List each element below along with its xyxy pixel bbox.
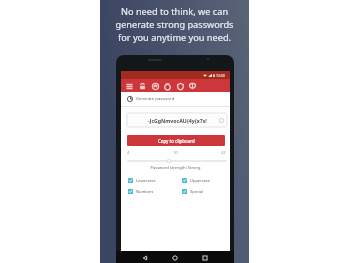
button[interactable]: Numbers xyxy=(128,189,154,194)
button[interactable]: History xyxy=(163,82,172,91)
staticText: Special xyxy=(190,189,204,194)
staticText: -JcGgNmvocAU{4y{x7s! xyxy=(148,117,207,124)
button[interactable]: Special xyxy=(182,189,204,194)
button[interactable]: Menu xyxy=(125,82,134,91)
button[interactable]: Security check xyxy=(176,82,185,91)
staticText: 10 xyxy=(173,150,178,155)
button[interactable]: Lowercase xyxy=(128,178,156,183)
staticText: Password strength: Strong xyxy=(121,165,230,170)
staticText: 32 xyxy=(221,150,226,155)
staticText: Uppercase xyxy=(190,178,211,183)
button[interactable]: Copy to clipboard xyxy=(127,135,225,146)
button[interactable]: Uppercase xyxy=(182,178,211,183)
staticText: No need to think, we can generate strong… xyxy=(100,5,249,44)
button[interactable] xyxy=(127,157,227,165)
button[interactable]: -JcGgNmvocAU{4y{x7s! xyxy=(127,113,227,127)
button[interactable]: Password vault xyxy=(138,82,147,91)
button[interactable]: Home xyxy=(171,254,179,262)
staticText: Generate password xyxy=(136,96,175,102)
staticText: 4 xyxy=(127,150,130,155)
button[interactable]: Recents xyxy=(201,254,209,262)
staticText: 12:30 xyxy=(216,73,225,78)
button[interactable]: Generate xyxy=(151,82,160,91)
staticText: Lowercase xyxy=(136,178,156,183)
staticText: Numbers xyxy=(136,189,154,194)
button[interactable]: Notes xyxy=(188,82,197,91)
staticText: Copy to clipboard xyxy=(158,138,195,144)
button[interactable]: Back xyxy=(141,254,149,262)
